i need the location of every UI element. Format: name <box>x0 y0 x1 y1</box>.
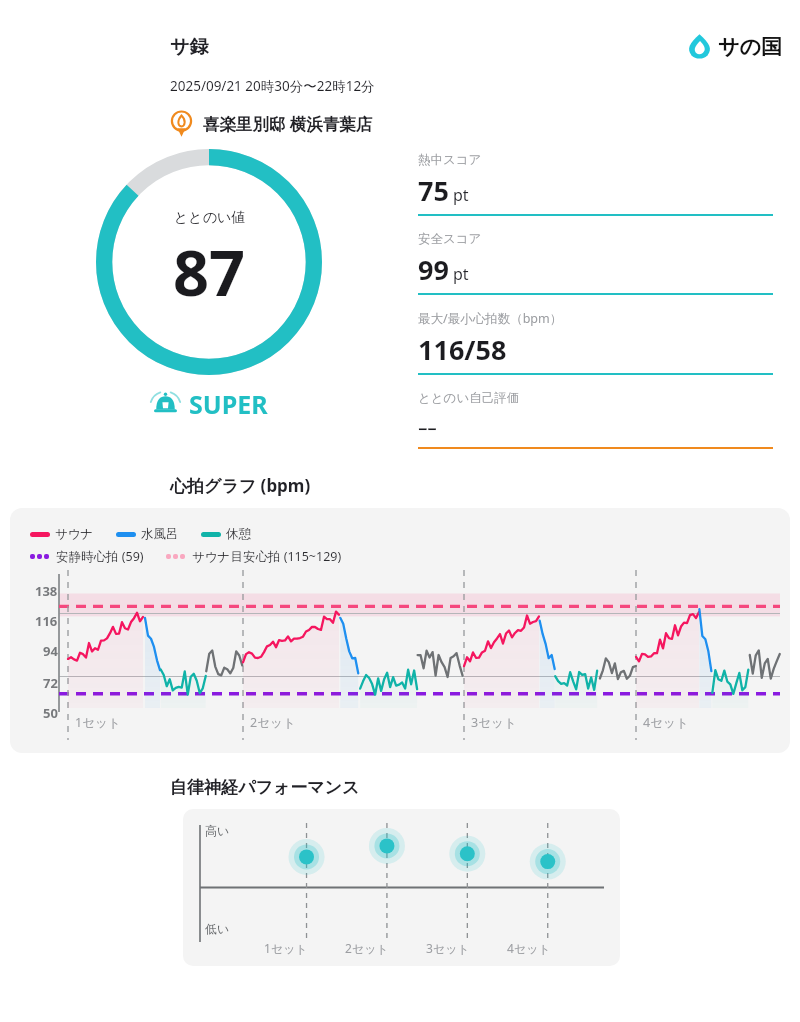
button[interactable]: ととのい自己評価 <box>418 390 773 464</box>
staticText: SUPER <box>189 387 268 421</box>
staticText: サウナ <box>55 526 94 542</box>
staticText: 水風呂 <box>141 526 179 542</box>
staticText: 116/58 <box>418 331 507 368</box>
staticText: 2025/09/21 20時30分〜22時12分 <box>170 77 375 95</box>
staticText: 138 <box>35 582 58 600</box>
staticText: pt <box>453 184 469 206</box>
staticText: 3セット <box>471 714 517 731</box>
staticText: 喜楽里別邸 横浜青葉店 <box>203 112 373 135</box>
staticText: 75 <box>418 172 449 209</box>
staticText: ととのい自己評価 <box>418 390 520 406</box>
button[interactable]: 喜楽里別邸 横浜青葉店 <box>168 110 800 137</box>
staticText: 安全スコア <box>418 231 482 247</box>
staticText: 87 <box>173 229 246 315</box>
staticText: 4セット <box>507 940 551 956</box>
button[interactable]: 安全スコア <box>418 231 773 310</box>
staticText: 心拍グラフ (bpm) <box>170 474 311 497</box>
staticText: 1セット <box>75 714 121 731</box>
staticText: 2セット <box>345 940 389 956</box>
staticText: 72 <box>43 674 58 692</box>
staticText: 1セット <box>264 940 308 956</box>
staticText: サの国 <box>718 34 782 60</box>
staticText: 休憩 <box>226 526 251 542</box>
button[interactable]: 高い <box>183 809 620 966</box>
staticText: ととのい値 <box>174 209 246 227</box>
staticText: 4セット <box>643 714 689 731</box>
button[interactable]: 最大/最小心拍数（bpm） <box>418 310 773 390</box>
staticText: 安静時心拍 (59) <box>56 548 144 565</box>
staticText: 自律神経パフォーマンス <box>170 777 360 798</box>
staticText: 3セット <box>426 940 470 956</box>
staticText: 94 <box>43 642 58 660</box>
staticText: 116 <box>35 612 58 630</box>
button[interactable]: サの国 <box>686 33 782 60</box>
staticText: 高い <box>205 823 230 838</box>
button[interactable]: サウナ <box>10 508 790 753</box>
staticText: −− <box>418 418 437 440</box>
staticText: サウナ目安心拍 (115~129) <box>192 548 342 565</box>
button[interactable]: SUPER <box>150 387 268 421</box>
staticText: 熱中スコア <box>418 152 482 168</box>
staticText: 低い <box>205 921 230 936</box>
staticText: 2セット <box>250 714 296 731</box>
staticText: 50 <box>43 704 58 722</box>
staticText: 99 <box>418 251 449 288</box>
button[interactable]: 熱中スコア <box>418 152 773 231</box>
staticText: サ録 <box>170 35 209 59</box>
staticText: pt <box>453 263 469 285</box>
staticText: 最大/最小心拍数（bpm） <box>418 310 563 327</box>
